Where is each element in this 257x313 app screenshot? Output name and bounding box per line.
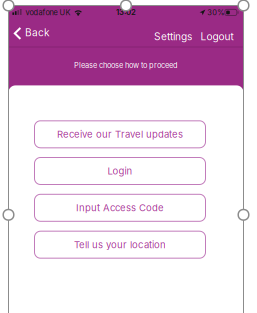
staticText: vodafone UK: [26, 8, 71, 17]
staticText: Receive our Travel updates: [57, 128, 183, 140]
button[interactable]: Receive our Travel updates: [34, 121, 205, 148]
button[interactable]: Login: [34, 157, 205, 184]
staticText: Input Access Code: [76, 202, 164, 213]
button[interactable]: Tell us your location: [34, 231, 205, 258]
button[interactable]: Logout: [197, 26, 237, 48]
button[interactable]: Settings: [151, 26, 195, 48]
staticText: Settings: [154, 30, 192, 43]
staticText: Login: [107, 165, 132, 177]
button[interactable]: Input Access Code: [34, 194, 205, 221]
button[interactable]: Back: [14, 26, 53, 48]
staticText: Back: [25, 26, 50, 39]
staticText: 13:02: [116, 7, 136, 17]
staticText: Logout: [200, 30, 233, 43]
staticText: 30%: [207, 8, 224, 17]
staticText: Tell us your location: [74, 239, 166, 250]
staticText: Please choose how to proceed: [74, 61, 178, 70]
